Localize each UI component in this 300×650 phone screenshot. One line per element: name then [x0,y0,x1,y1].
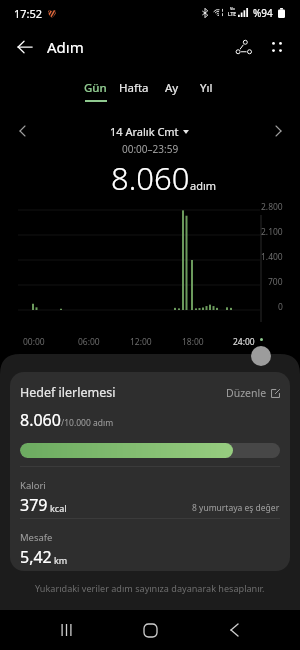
staticText: Gün [84,80,107,96]
staticText: 0 [278,301,283,313]
button[interactable]: Hafta [113,80,155,102]
staticText: 700 [268,276,283,288]
staticText: Adım [47,37,84,57]
button[interactable]: Back [214,610,254,650]
button[interactable]: Ay [155,80,189,102]
staticText: Düzenle [226,386,267,400]
staticText: Yıl [200,80,213,96]
staticText: Vo [230,6,235,11]
staticText: 18:00 [182,336,204,348]
button[interactable]: Mesafe [10,519,290,571]
button[interactable]: Previous day [12,121,32,141]
button[interactable]: Recent apps [46,610,86,650]
staticText: 12:00 [130,336,152,348]
staticText: km [54,554,68,566]
button[interactable]: Gün [78,80,113,102]
staticText: 8.060 [111,157,190,199]
staticText: 14 Aralık Cmt [110,124,179,139]
button[interactable]: Next day [268,121,288,141]
button[interactable]: Kalori [10,467,290,518]
staticText: 5,42 [20,546,52,568]
staticText: 8 yumurtaya eş değer [192,502,280,514]
button[interactable]: Yıl [189,80,223,102]
staticText: 00:00 [23,336,45,348]
staticText: Yukarıdaki veriler adım sayınıza dayanar… [35,582,265,594]
button[interactable]: Scroll [251,346,271,366]
button[interactable]: Share [226,30,260,64]
staticText: 8.060 [20,409,61,431]
staticText: adım [190,178,217,193]
staticText: kcal [50,502,67,514]
staticText: Kalori [20,479,46,492]
staticText: Ay [165,80,179,96]
staticText: %94 [253,6,273,20]
button[interactable]: Home [130,610,170,650]
button[interactable]: 14 Aralık Cmt [106,122,193,141]
button[interactable]: Düzenle [226,386,280,400]
staticText: 17:52 [14,6,43,21]
staticText: 379 [20,494,48,516]
staticText: 24:00 [233,336,255,348]
button[interactable]: Back [8,30,42,64]
button[interactable]: Hedef ilerlemesi [10,372,290,466]
staticText: /10.000 adım [61,417,114,429]
staticText: 2.100 [261,226,283,238]
staticText: 00:00–23:59 [122,142,179,156]
staticText: LTE [228,11,237,18]
staticText: 06:00 [78,336,100,348]
staticText: Hedef ilerlemesi [20,384,116,401]
staticText: Hafta [119,80,149,96]
staticText: 1.400 [261,251,283,263]
staticText: Mesafe [20,531,53,544]
button[interactable]: More options [260,30,294,64]
staticText: 2.800 [261,201,283,213]
